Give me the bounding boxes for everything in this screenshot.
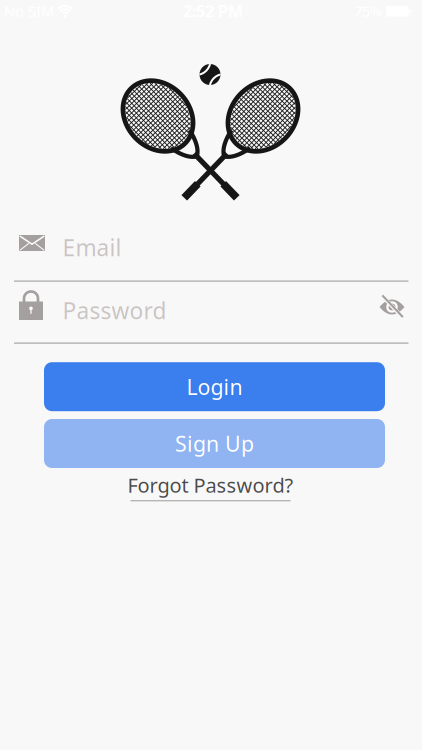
textField[interactable]: Password <box>14 285 408 335</box>
staticText: Login <box>186 372 242 401</box>
button[interactable]: Sign Up <box>44 419 385 468</box>
button[interactable]: Login <box>44 362 385 411</box>
textField[interactable]: Email <box>14 222 408 272</box>
button[interactable]: Show password <box>379 296 404 317</box>
staticText: Sign Up <box>175 429 254 458</box>
button[interactable]: Forgot Password? <box>127 472 293 501</box>
staticText: Forgot Password? <box>127 472 293 498</box>
staticText: Password <box>62 295 166 325</box>
staticText: Email <box>62 232 121 262</box>
